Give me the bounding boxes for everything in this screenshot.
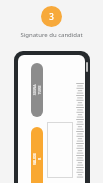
button[interactable]: SIGNATURE — [31, 63, 43, 117]
other: Power button — [86, 62, 88, 72]
staticText: Signature du candidat — [20, 31, 83, 39]
staticText: 3 — [49, 11, 54, 22]
button[interactable]: 3 — [41, 6, 62, 27]
staticText: VALIDER — [32, 153, 42, 165]
staticText: SIGNATURE — [32, 84, 42, 96]
button[interactable]: VALIDER — [31, 127, 43, 183]
